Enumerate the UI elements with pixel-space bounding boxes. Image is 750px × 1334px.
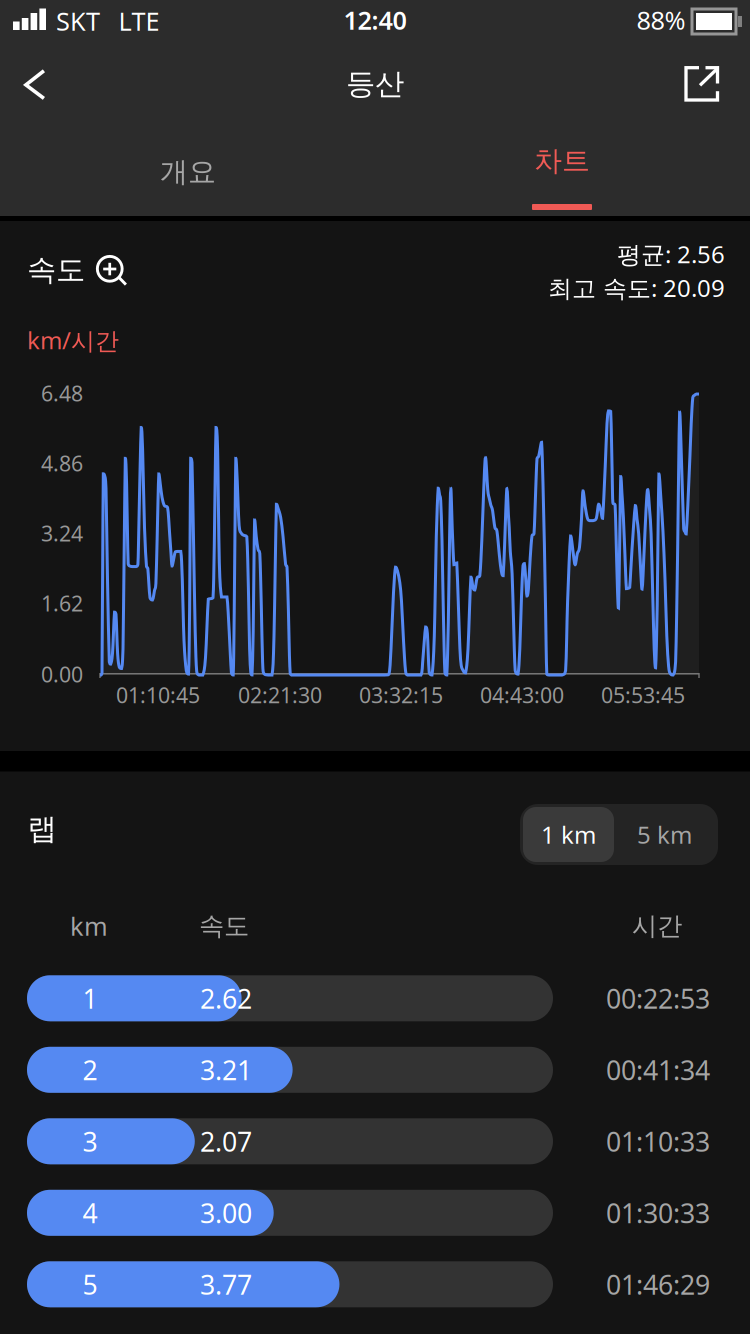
staticText: 01:30:33 (606, 1195, 710, 1230)
staticText: 02:21:30 (238, 681, 322, 709)
button[interactable]: 1 km (523, 807, 614, 862)
staticText: 0.00 (41, 660, 83, 688)
button[interactable]: 차트 (374, 128, 749, 216)
staticText: 88% (636, 3, 685, 37)
staticText: 05:53:45 (601, 681, 685, 709)
staticText: 6.48 (41, 379, 83, 407)
button[interactable]: 5 (0, 1248, 750, 1320)
staticText: 2.07 (200, 1124, 252, 1159)
button[interactable]: Zoom (87, 244, 133, 294)
button[interactable]: 4 (0, 1177, 750, 1248)
staticText: 차트 (534, 144, 590, 178)
staticText: 01:10:45 (116, 681, 200, 709)
staticText: 3 (82, 1124, 97, 1159)
staticText: 4 (82, 1195, 97, 1230)
staticText: km/시간 (27, 324, 119, 356)
button[interactable]: Share (673, 48, 744, 119)
staticText: 3.77 (200, 1267, 252, 1302)
staticText: 1.62 (41, 589, 83, 617)
staticText: 5 (82, 1267, 97, 1302)
button[interactable]: Back (0, 40, 71, 130)
staticText: 03:32:15 (359, 681, 443, 709)
staticText: 최고 속도: 20.09 (548, 272, 725, 304)
staticText: 평균: 2.56 (617, 238, 725, 270)
staticText: SKT (56, 4, 100, 38)
staticText: 시간 (632, 910, 682, 941)
staticText: 속도 (199, 910, 249, 941)
staticText: 3.24 (41, 519, 83, 547)
staticText: 00:41:34 (606, 1052, 710, 1087)
staticText: 00:22:53 (606, 981, 710, 1016)
button[interactable]: 개요 (0, 128, 375, 216)
button[interactable]: 2 (0, 1034, 750, 1105)
staticText: 3.00 (200, 1195, 252, 1230)
staticText: 2.62 (200, 981, 252, 1016)
staticText: 01:10:33 (606, 1124, 710, 1159)
staticText: 랩 (27, 811, 56, 847)
staticText: 12:40 (343, 3, 406, 37)
staticText: 5 km (637, 819, 692, 850)
staticText: 속도 (27, 252, 85, 288)
staticText: LTE (118, 4, 159, 38)
staticText: 2 (82, 1052, 97, 1087)
staticText: 4.86 (41, 449, 83, 477)
staticText: 등산 (346, 66, 404, 102)
button[interactable]: 3 (0, 1105, 750, 1177)
staticText: 01:46:29 (606, 1267, 710, 1302)
staticText: 1 km (541, 819, 596, 850)
staticText: 개요 (160, 155, 216, 189)
staticText: km (70, 909, 108, 943)
staticText: 04:43:00 (480, 681, 564, 709)
staticText: 1 (82, 981, 97, 1016)
staticText: 3.21 (200, 1052, 252, 1087)
button[interactable]: 5 km (614, 807, 715, 862)
button[interactable]: 1 (0, 962, 750, 1034)
